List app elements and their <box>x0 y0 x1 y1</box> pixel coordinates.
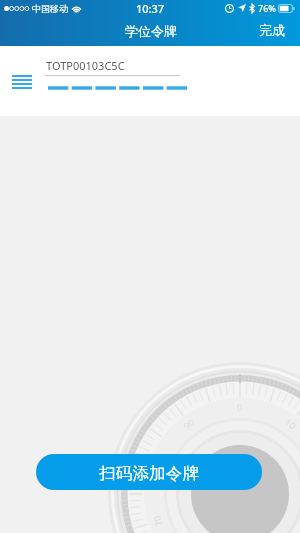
staticText: 76% <box>258 2 276 14</box>
other: Reorder token <box>12 75 32 89</box>
button[interactable]: 完成 <box>244 18 300 42</box>
button[interactable]: Reorder token <box>0 46 300 116</box>
button[interactable]: 扫码添加令牌 <box>36 454 262 490</box>
staticText: 完成 <box>259 22 285 38</box>
staticText: 10:37 <box>136 1 165 16</box>
staticText: 中国移动 <box>32 3 68 14</box>
staticText: 扫码添加令牌 <box>99 463 200 484</box>
staticText: 学位令牌 <box>125 23 177 39</box>
staticText: TOTP00103C5C <box>46 58 125 73</box>
